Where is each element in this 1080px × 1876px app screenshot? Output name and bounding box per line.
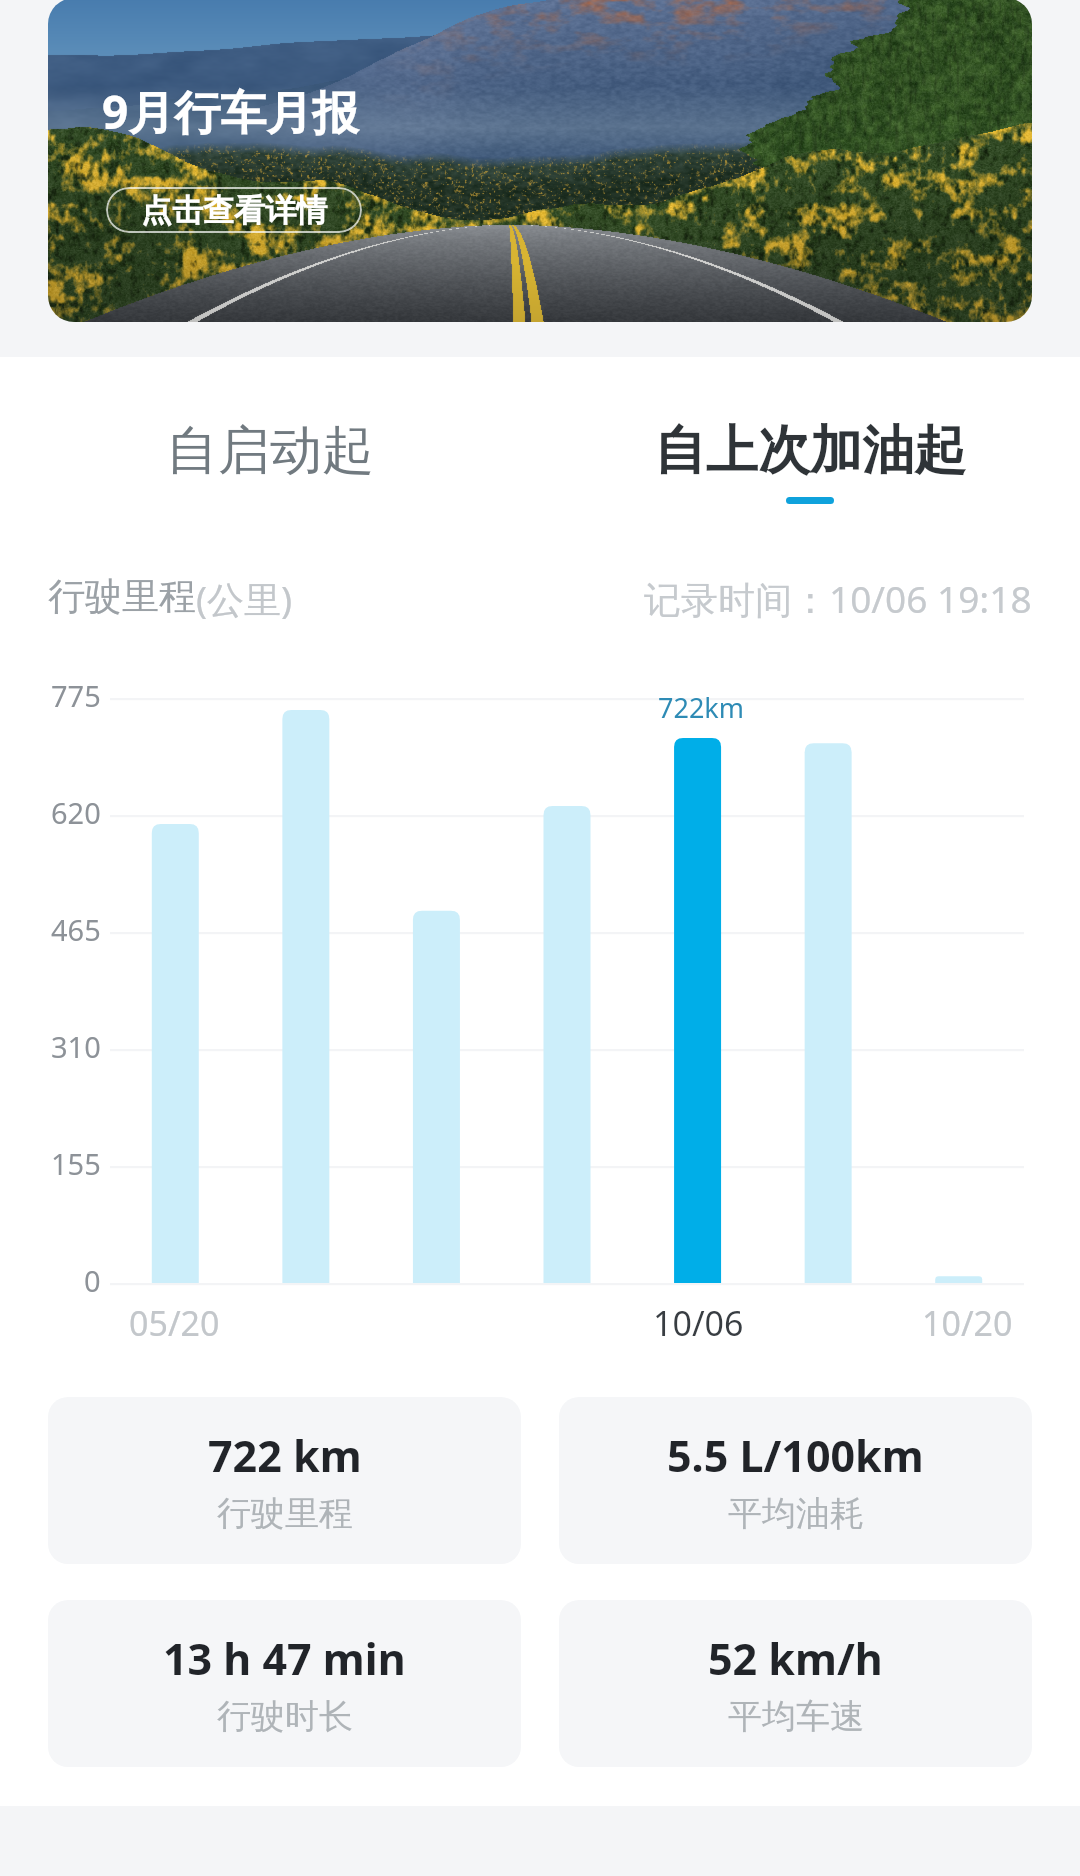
staticText: 310: [51, 1027, 101, 1066]
staticText: 775: [51, 676, 101, 715]
button[interactable]: 13 h 47 min: [48, 1600, 521, 1767]
button[interactable]: 自启动起: [0, 418, 540, 528]
staticText: 记录时间：10/06 19:18: [644, 573, 1032, 624]
button[interactable]: 9月行车月报: [48, 0, 1032, 322]
staticText: 行驶里程: [217, 1492, 353, 1535]
button[interactable]: 点击查看详情: [106, 187, 362, 233]
staticText: 620: [51, 793, 101, 832]
staticText: 10/06: [653, 1300, 744, 1346]
staticText: 点击查看详情: [141, 191, 327, 230]
staticText: 行驶时长: [217, 1695, 353, 1738]
staticText: 平均车速: [728, 1695, 864, 1738]
button[interactable]: 52 km/h: [559, 1600, 1032, 1767]
staticText: 05/20: [129, 1300, 220, 1346]
staticText: 自上次加油起: [654, 418, 966, 484]
staticText: 行驶里程: [48, 573, 196, 620]
staticText: 52 km/h: [708, 1629, 883, 1688]
button[interactable]: 自上次加油起: [540, 418, 1080, 528]
staticText: 722km: [658, 689, 744, 726]
staticText: 0: [84, 1261, 101, 1300]
staticText: 465: [51, 910, 101, 949]
image: 9月行车月报: [48, 0, 1032, 322]
staticText: 722 km: [208, 1426, 362, 1485]
staticText: 自启动起: [166, 418, 374, 484]
staticText: (公里): [196, 573, 293, 624]
staticText: 9月行车月报: [102, 80, 359, 143]
staticText: 5.5 L/100km: [667, 1426, 924, 1485]
staticText: 155: [51, 1144, 101, 1183]
button[interactable]: 5.5 L/100km: [559, 1397, 1032, 1564]
button[interactable]: 722 km: [48, 1397, 521, 1564]
staticText: 13 h 47 min: [163, 1629, 406, 1688]
staticText: 10/20: [922, 1300, 1013, 1346]
staticText: 平均油耗: [728, 1492, 864, 1535]
